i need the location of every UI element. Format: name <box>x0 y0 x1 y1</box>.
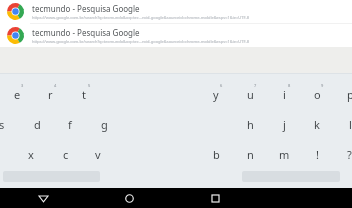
button[interactable]: Recent apps <box>172 188 258 208</box>
button[interactable]: d <box>21 113 53 135</box>
button[interactable]: f <box>54 113 86 135</box>
button[interactable]: g <box>88 113 120 135</box>
button[interactable]: m <box>268 143 300 165</box>
staticText: d <box>34 117 41 132</box>
button[interactable]: r <box>34 83 66 105</box>
button[interactable]: l <box>334 113 352 135</box>
staticText: c <box>63 147 69 162</box>
button[interactable]: j <box>268 113 300 135</box>
button[interactable]: i <box>268 83 300 105</box>
staticText: m <box>279 147 290 162</box>
button[interactable]: n <box>234 143 266 165</box>
staticText: s <box>0 117 5 132</box>
staticText: u <box>247 87 254 102</box>
staticText: g <box>101 117 108 132</box>
button[interactable]: x <box>15 143 47 165</box>
staticText: https://www.google.com.br/search?q=tecmu… <box>32 39 250 44</box>
button[interactable]: t <box>68 83 100 105</box>
staticText: o <box>314 87 321 102</box>
button[interactable]: h <box>234 113 266 135</box>
button[interactable]: p <box>334 83 352 105</box>
staticText: ? <box>347 147 352 162</box>
staticText: b <box>213 147 220 162</box>
button[interactable]: tecmundo - Pesquisa Google <box>0 0 352 23</box>
button[interactable]: b <box>200 143 232 165</box>
button[interactable]: y <box>200 83 232 105</box>
button[interactable]: s <box>0 113 18 135</box>
staticText: ! <box>316 147 319 162</box>
staticText: i <box>283 87 286 102</box>
button[interactable]: Back <box>0 188 86 208</box>
button[interactable]: u <box>234 83 266 105</box>
button[interactable]: ! <box>301 143 333 165</box>
button[interactable]: v <box>82 143 114 165</box>
button[interactable]: ? <box>333 143 352 165</box>
staticText: 6 <box>220 83 223 88</box>
button[interactable]: tecmundo - Pesquisa Google <box>0 24 352 47</box>
staticText: 5 <box>88 83 91 88</box>
staticText: 3 <box>21 83 24 88</box>
staticText: f <box>68 117 72 132</box>
staticText: 4 <box>54 83 57 88</box>
staticText: tecmundo - Pesquisa Google <box>32 3 140 14</box>
button[interactable]: k <box>301 113 333 135</box>
staticText: r <box>48 87 53 102</box>
staticText: 7 <box>254 83 257 88</box>
staticText: y <box>213 87 219 102</box>
staticText: h <box>247 117 254 132</box>
staticText: t <box>82 87 86 102</box>
staticText: https://www.google.com.br/search?q=tecmu… <box>32 15 250 20</box>
button[interactable]: Home <box>86 188 172 208</box>
button[interactable]: e <box>1 83 33 105</box>
button[interactable]: c <box>50 143 82 165</box>
staticText: j <box>283 117 286 132</box>
staticText: p <box>347 87 352 102</box>
button[interactable]: o <box>301 83 333 105</box>
staticText: l <box>349 117 352 132</box>
staticText: n <box>247 147 254 162</box>
staticText: x <box>28 147 34 162</box>
staticText: 9 <box>321 83 324 88</box>
staticText: v <box>95 147 101 162</box>
staticText: 8 <box>288 83 291 88</box>
staticText: e <box>14 87 21 102</box>
staticText: k <box>314 117 320 132</box>
staticText: tecmundo - Pesquisa Google <box>32 27 140 38</box>
